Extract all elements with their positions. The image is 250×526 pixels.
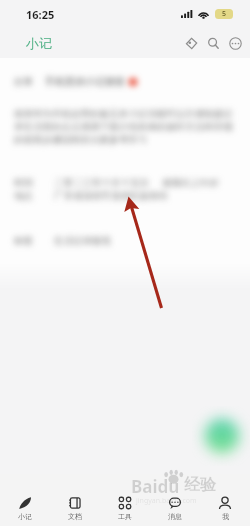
staticText: 使用华为手机自带的备忘录小记功能可以方便快捷记: [14, 108, 233, 120]
staticText: 5: [222, 9, 227, 19]
staticText: 广东省深圳市龙岗区坂田街: [54, 190, 168, 202]
button[interactable]: More: [224, 32, 246, 54]
staticText: 的使用步骤说明供大家参考学习: [14, 134, 147, 146]
staticText: 地点: [14, 190, 33, 202]
staticText: Baidu: [131, 475, 180, 498]
staticText: 分享: [14, 76, 33, 88]
staticText: 生活记录随笔: [54, 235, 111, 247]
staticText: 消息: [168, 512, 182, 521]
button[interactable]: 小记: [0, 474, 50, 526]
button[interactable]: Tags: [180, 32, 202, 54]
button[interactable]: 消息: [150, 474, 200, 526]
staticText: 小记: [18, 512, 32, 521]
staticText: 标签: [14, 235, 33, 247]
staticText: 16:25: [26, 7, 55, 22]
staticText: 手机里的小记便签: [45, 75, 125, 88]
staticText: jingyan.baidu.com: [136, 496, 197, 506]
staticText: 录生活里的点点滴滴下面介绍具体的操作方法和详细: [14, 121, 233, 133]
staticText: 我: [222, 512, 229, 521]
staticText: 经验: [184, 475, 216, 495]
staticText: 二零二三年十月十五日: [54, 177, 149, 189]
button[interactable]: Search: [202, 32, 224, 54]
staticText: 文档: [68, 512, 82, 521]
button[interactable]: 文档: [50, 474, 100, 526]
staticText: 工具: [118, 512, 132, 521]
staticText: 星期日上午好: [162, 177, 219, 189]
button[interactable]: New note: [204, 418, 240, 454]
staticText: 时间: [14, 177, 33, 189]
staticText: 小记: [26, 35, 52, 51]
button[interactable]: 我: [200, 474, 250, 526]
button[interactable]: 工具: [100, 474, 150, 526]
